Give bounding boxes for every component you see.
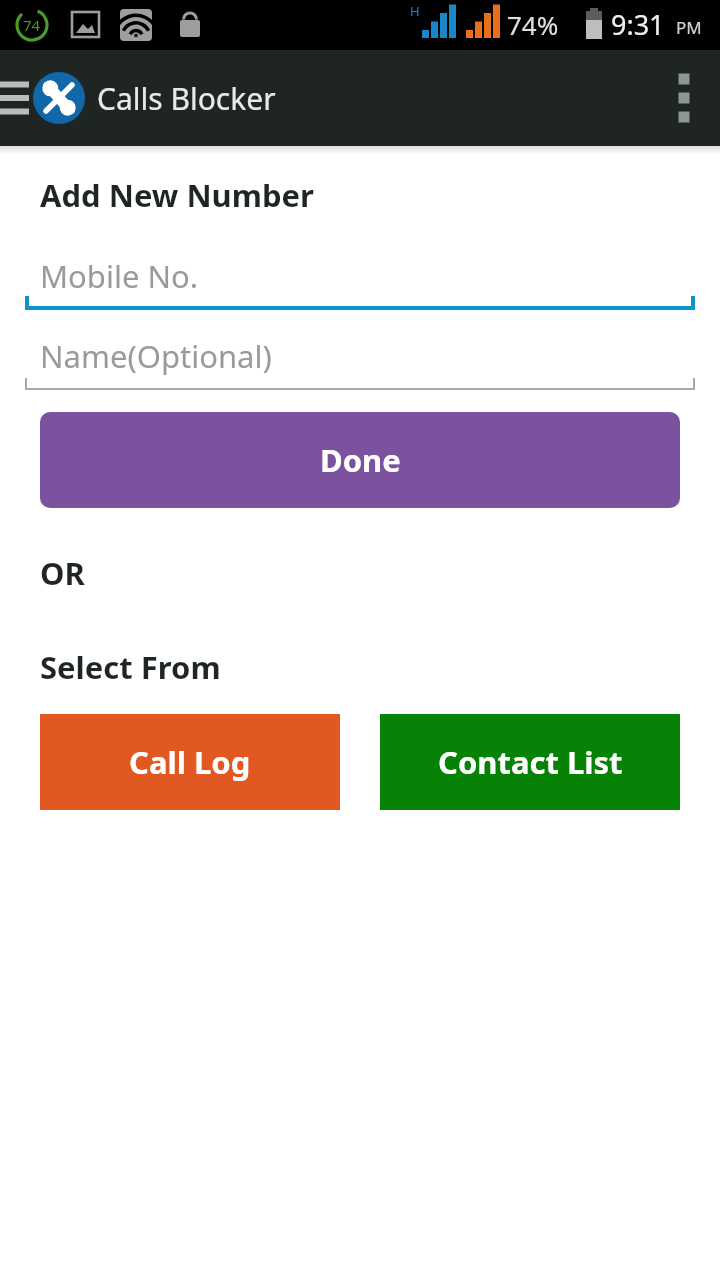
button[interactable]: Call Log (40, 714, 340, 810)
staticText: Mobile No. (40, 255, 199, 297)
staticText: Call Log (129, 741, 251, 783)
staticText: Contact List (438, 741, 623, 783)
button[interactable]: Mobile No. (25, 248, 695, 310)
staticText: 9:31 (611, 6, 665, 43)
button[interactable]: Name(Optional) (25, 328, 695, 390)
button[interactable]: Open navigation drawer (0, 67, 33, 129)
staticText: Calls Blocker (97, 78, 276, 119)
button[interactable]: Contact List (380, 714, 680, 810)
staticText: Select From (40, 646, 221, 688)
staticText: Done (320, 439, 401, 481)
staticText: OR (40, 552, 85, 594)
staticText: PM (676, 16, 702, 39)
staticText: 74% (507, 7, 559, 42)
button[interactable]: More options (648, 50, 720, 146)
button[interactable]: Done (40, 412, 680, 508)
staticText: Add New Number (40, 174, 314, 216)
staticText: Name(Optional) (40, 335, 272, 377)
staticText: H (410, 2, 420, 20)
staticText: 74 (23, 15, 41, 35)
